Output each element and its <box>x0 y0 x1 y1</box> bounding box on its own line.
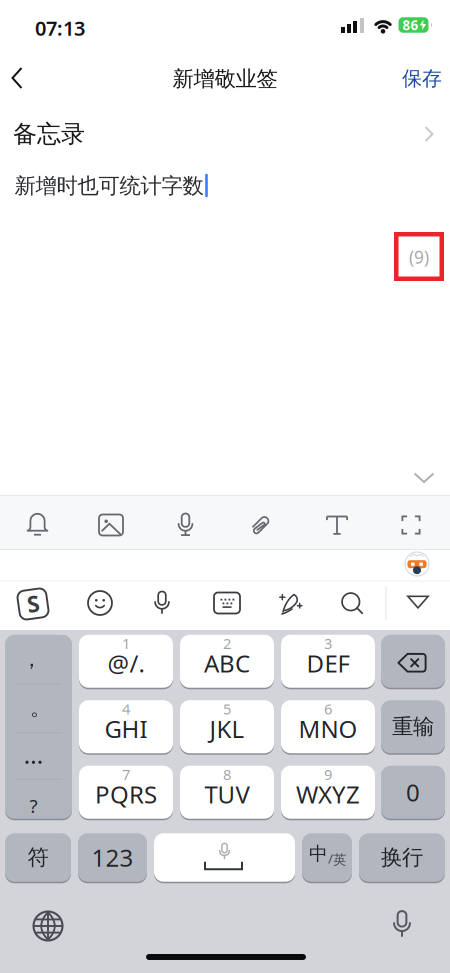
staticText: (9) <box>409 245 429 268</box>
button[interactable]: Reminder <box>15 501 60 546</box>
button[interactable]: Voice <box>142 582 182 623</box>
button[interactable]: Delete <box>381 634 445 688</box>
staticText: 保存 <box>402 66 442 91</box>
button[interactable]: Sogou <box>10 581 55 627</box>
staticText: 2 <box>223 633 231 653</box>
staticText: TUV <box>204 778 249 810</box>
button[interactable]: 8 <box>180 765 274 819</box>
staticText: GHI <box>104 713 147 745</box>
staticText: 7 <box>122 764 130 784</box>
button[interactable]: 备忘录 <box>0 112 450 156</box>
staticText: 1 <box>122 633 130 653</box>
button[interactable]: 6 <box>281 699 375 754</box>
staticText: 5 <box>223 699 231 718</box>
staticText: 0 <box>406 776 420 808</box>
button[interactable]: 5 <box>180 699 274 754</box>
button[interactable]: Voice input <box>163 502 207 547</box>
staticText: 。 <box>30 695 51 721</box>
staticText: S <box>27 588 39 618</box>
button[interactable]: Back <box>2 58 32 98</box>
staticText: 重输 <box>392 714 434 740</box>
button[interactable]: 1 <box>79 634 173 688</box>
button[interactable]: ， <box>5 634 72 819</box>
staticText: 换行 <box>381 844 423 871</box>
staticText: 6 <box>324 699 332 718</box>
button[interactable]: Insert photo <box>89 504 133 545</box>
staticText: 3 <box>324 633 332 653</box>
staticText: 8 <box>223 764 231 784</box>
staticText: 备忘录 <box>13 119 85 149</box>
button[interactable]: Attachment <box>239 503 283 547</box>
button[interactable]: Keyboards <box>206 584 248 621</box>
button[interactable]: 3 <box>281 634 375 688</box>
button[interactable]: Text format <box>316 505 358 544</box>
button[interactable]: Search <box>333 584 371 622</box>
button[interactable]: 重输 <box>381 699 445 754</box>
staticText: DEF <box>306 647 349 679</box>
staticText: 9 <box>324 764 332 784</box>
staticText: 新增敬业签 <box>172 66 277 92</box>
button[interactable]: Space <box>154 832 295 882</box>
button[interactable]: 7 <box>79 765 173 819</box>
button[interactable]: Emoji <box>80 583 120 623</box>
button[interactable]: Sogou assistant <box>405 552 429 576</box>
staticText: PQRS <box>95 778 157 810</box>
button[interactable]: Switch keyboard <box>23 901 72 950</box>
button[interactable]: Collapse keyboard <box>399 587 437 616</box>
staticText: / <box>328 849 333 867</box>
staticText: WXYZ <box>296 778 360 810</box>
staticText: 英 <box>333 852 346 868</box>
button[interactable]: 4 <box>79 699 173 754</box>
staticText: @/. <box>107 647 144 679</box>
button[interactable]: Hide keyboard <box>406 465 441 491</box>
staticText: 4 <box>122 699 130 718</box>
button[interactable]: 中 <box>302 832 352 882</box>
staticText: ? <box>29 793 37 818</box>
button[interactable]: 123 <box>78 832 147 882</box>
button[interactable]: Handwriting <box>271 583 310 622</box>
button[interactable]: 9 <box>281 765 375 819</box>
button[interactable]: 0 <box>381 765 445 819</box>
button[interactable]: Dictate <box>378 900 426 950</box>
staticText: 123 <box>91 842 133 873</box>
button[interactable]: Full screen <box>391 505 430 544</box>
staticText: 86 <box>402 16 418 34</box>
staticText: 新增时也可统计字数 <box>14 173 203 199</box>
staticText: MNO <box>298 713 357 745</box>
button[interactable]: 换行 <box>359 832 445 882</box>
staticText: 符 <box>27 844 48 871</box>
staticText: JKL <box>209 713 244 745</box>
button[interactable]: 保存 <box>396 60 448 97</box>
staticText: 07:13 <box>35 15 85 41</box>
button[interactable]: 2 <box>180 634 274 688</box>
staticText: 中 <box>309 842 328 865</box>
staticText: ABC <box>204 647 250 679</box>
button[interactable]: 符 <box>5 832 71 882</box>
staticText: ， <box>21 646 42 672</box>
